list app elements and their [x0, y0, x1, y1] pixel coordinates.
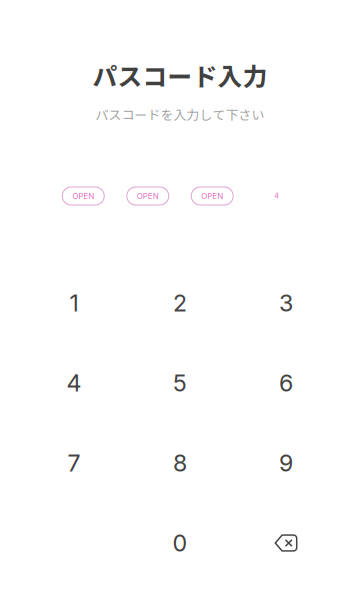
staticText: 9: [279, 449, 293, 477]
button[interactable]: 3: [233, 263, 339, 343]
staticText: パスコード入力: [92, 57, 267, 93]
button[interactable]: 6: [233, 343, 339, 423]
button[interactable]: 5: [127, 343, 233, 423]
button[interactable]: Delete: [233, 503, 339, 583]
staticText: 5: [173, 369, 187, 397]
button[interactable]: 1: [21, 263, 127, 343]
staticText: OPEN: [201, 191, 223, 201]
button[interactable]: 4: [21, 343, 127, 423]
button[interactable]: 7: [21, 423, 127, 503]
staticText: OPEN: [72, 191, 94, 201]
button[interactable]: 9: [233, 423, 339, 503]
button[interactable]: 0: [127, 503, 233, 583]
staticText: 6: [279, 369, 293, 397]
staticText: 4: [66, 369, 81, 397]
staticText: 3: [279, 289, 293, 317]
staticText: OPEN: [137, 191, 159, 201]
staticText: 4: [274, 192, 279, 200]
staticText: 2: [173, 289, 187, 317]
staticText: パスコードを入力して下さい: [95, 105, 264, 123]
staticText: 0: [172, 529, 187, 557]
button[interactable]: 8: [127, 423, 233, 503]
staticText: 7: [67, 449, 80, 477]
button[interactable]: 2: [127, 263, 233, 343]
staticText: 1: [69, 289, 78, 317]
staticText: 8: [173, 449, 187, 477]
